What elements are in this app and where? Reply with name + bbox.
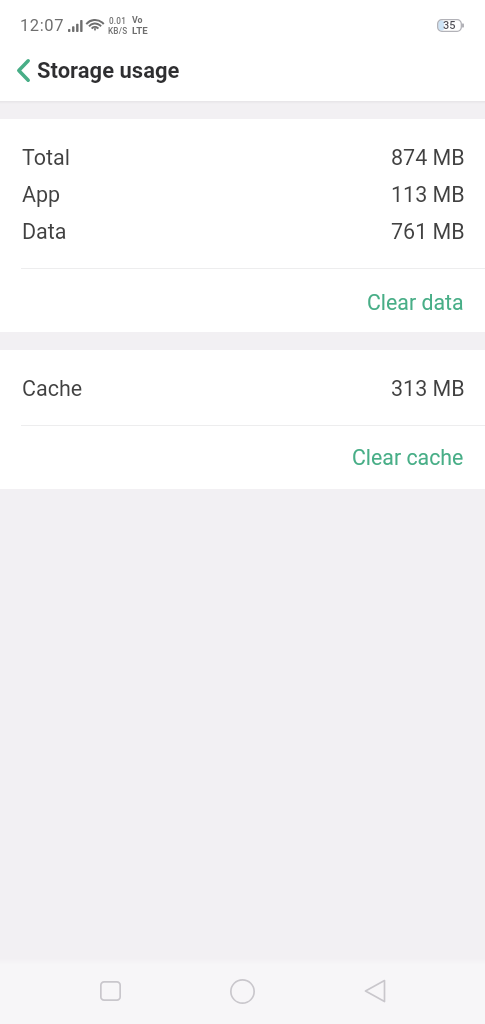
button[interactable]: Home [198,958,287,1024]
staticText: Vo [132,15,143,25]
button[interactable]: Clear cache [0,426,485,489]
staticText: 35 [443,19,456,32]
staticText: 12:07 [20,16,65,35]
button[interactable]: Data [0,213,485,250]
staticText: Clear data [367,290,464,315]
staticText: 113 MB [391,182,465,207]
button[interactable]: Back [330,958,419,1024]
staticText: Storage usage [37,58,180,84]
button[interactable]: Total [0,139,485,176]
button[interactable]: App [0,176,485,213]
staticText: 761 MB [391,219,465,244]
button[interactable]: Clear data [0,269,485,332]
staticText: 874 MB [391,145,465,170]
staticText: LTE [132,25,148,36]
button[interactable]: Recent apps [66,958,155,1024]
staticText: Clear cache [352,445,464,470]
staticText: Total [22,145,71,170]
button[interactable]: Cache [0,370,485,407]
staticText: Cache [22,376,83,401]
staticText: App [22,182,61,207]
staticText: 313 MB [391,376,465,401]
staticText: KB/S [108,26,128,36]
button[interactable]: Back [3,45,43,101]
staticText: 0.01 [109,16,127,26]
staticText: Data [22,219,67,244]
